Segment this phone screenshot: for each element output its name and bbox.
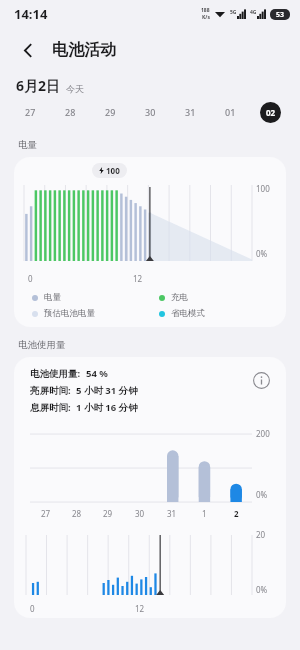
staticText: 100 [106, 165, 120, 176]
staticText: 6月2日 [16, 76, 61, 95]
staticText: 27 [41, 508, 51, 519]
staticText: 54 % [86, 367, 108, 380]
staticText: 12 [133, 273, 143, 284]
staticText: 预估电池电量 [44, 308, 95, 319]
staticText: 200 [256, 428, 270, 439]
staticText: 53 [276, 10, 285, 20]
staticText: 27 [25, 106, 36, 118]
staticText: 02 [266, 107, 276, 118]
staticText: 0% [256, 584, 268, 595]
button[interactable]: 100 [14, 157, 286, 327]
button[interactable]: 27 [10, 95, 50, 129]
staticText: 4G [250, 9, 257, 16]
staticText: 1 [202, 508, 207, 519]
staticText: 省电模式 [171, 308, 205, 319]
staticText: 今天 [66, 83, 84, 94]
staticText: K/s [202, 14, 210, 21]
staticText: 100 [256, 183, 270, 194]
button[interactable]: 02 [250, 95, 290, 129]
button[interactable]: 29 [90, 95, 130, 129]
staticText: 0% [256, 248, 268, 259]
staticText: 29 [103, 508, 113, 519]
staticText: 亮屏时间: [30, 384, 71, 397]
button[interactable]: 信息 [248, 367, 274, 393]
staticText: 5 小时 31 分钟 [76, 384, 138, 397]
button[interactable]: 电池使用量: [14, 357, 286, 618]
staticText: 30 [135, 508, 145, 519]
button[interactable]: 返回 [12, 34, 44, 66]
button[interactable]: 31 [170, 95, 210, 129]
staticText: 充电 [171, 292, 188, 303]
staticText: 5G [230, 9, 237, 16]
staticText: 息屏时间: [30, 401, 71, 414]
staticText: 31 [167, 508, 177, 519]
staticText: 01 [225, 106, 236, 118]
staticText: 电池使用量: [30, 367, 81, 380]
button[interactable]: 01 [210, 95, 250, 129]
staticText: 0 [28, 273, 33, 284]
staticText: 31 [185, 106, 196, 118]
staticText: 2 [234, 508, 239, 519]
staticText: 0% [256, 489, 268, 500]
staticText: 电量 [44, 292, 61, 303]
staticText: 28 [72, 508, 82, 519]
staticText: 电量 [18, 139, 37, 151]
staticText: 1 小时 16 分钟 [76, 401, 138, 414]
staticText: 电池活动 [52, 40, 116, 60]
staticText: 188 [201, 7, 210, 14]
staticText: 电池使用量 [18, 339, 66, 351]
staticText: 12 [135, 603, 145, 614]
staticText: 20 [256, 529, 266, 540]
button[interactable]: 28 [50, 95, 90, 129]
button[interactable]: 30 [130, 95, 170, 129]
staticText: 0 [30, 603, 35, 614]
staticText: 29 [105, 106, 116, 118]
staticText: 14:14 [14, 5, 48, 23]
staticText: 28 [65, 106, 76, 118]
staticText: 30 [145, 106, 156, 118]
